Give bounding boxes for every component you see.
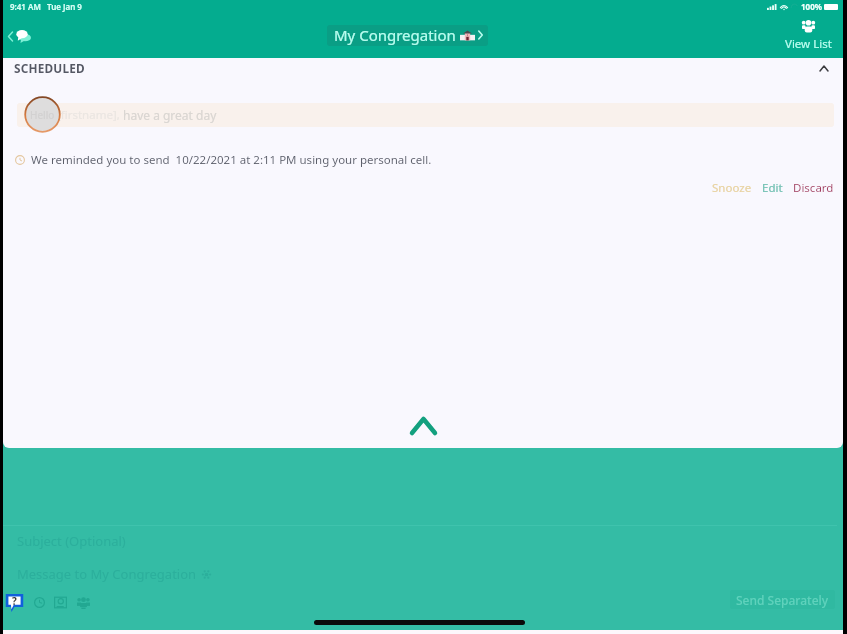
staticText: Tue Jan 9 — [47, 1, 82, 12]
staticText: [firstname], — [57, 107, 120, 123]
staticText: Send Separately — [736, 592, 829, 608]
other: Collapse section — [820, 66, 828, 71]
button[interactable]: Recipients — [77, 597, 90, 609]
staticText: ? — [12, 594, 17, 608]
staticText: My Congregation — [334, 25, 456, 45]
button[interactable]: Snooze — [707, 177, 757, 199]
button[interactable]: Expand composer — [412, 419, 435, 433]
staticText: Hello — [26, 107, 54, 123]
button[interactable]: View List — [781, 18, 836, 53]
staticText: 100% — [801, 1, 822, 12]
staticText: Message to My Congregation — [17, 565, 197, 583]
button[interactable]: Help — [5, 593, 24, 612]
button[interactable]: Attach media — [54, 596, 67, 609]
staticText: Hello — [30, 108, 55, 122]
staticText: We reminded you to send 10/22/2021 at 2:… — [31, 152, 432, 168]
button[interactable]: Hello — [17, 103, 834, 127]
staticText: View List — [785, 36, 832, 52]
button[interactable]: My Congregation — [327, 25, 488, 46]
button[interactable]: SCHEDULED — [14, 59, 828, 77]
staticText: SCHEDULED — [14, 60, 85, 76]
button[interactable]: Edit — [757, 177, 788, 199]
staticText: 9:41 AM — [10, 1, 41, 12]
staticText: Subject (Optional) — [17, 532, 126, 550]
button[interactable]: Back to conversations — [5, 25, 34, 47]
button[interactable]: Send Separately — [730, 590, 835, 609]
button[interactable]: Discard — [788, 177, 839, 199]
staticText: have a great day — [123, 107, 217, 123]
button[interactable]: Schedule message — [34, 597, 45, 608]
